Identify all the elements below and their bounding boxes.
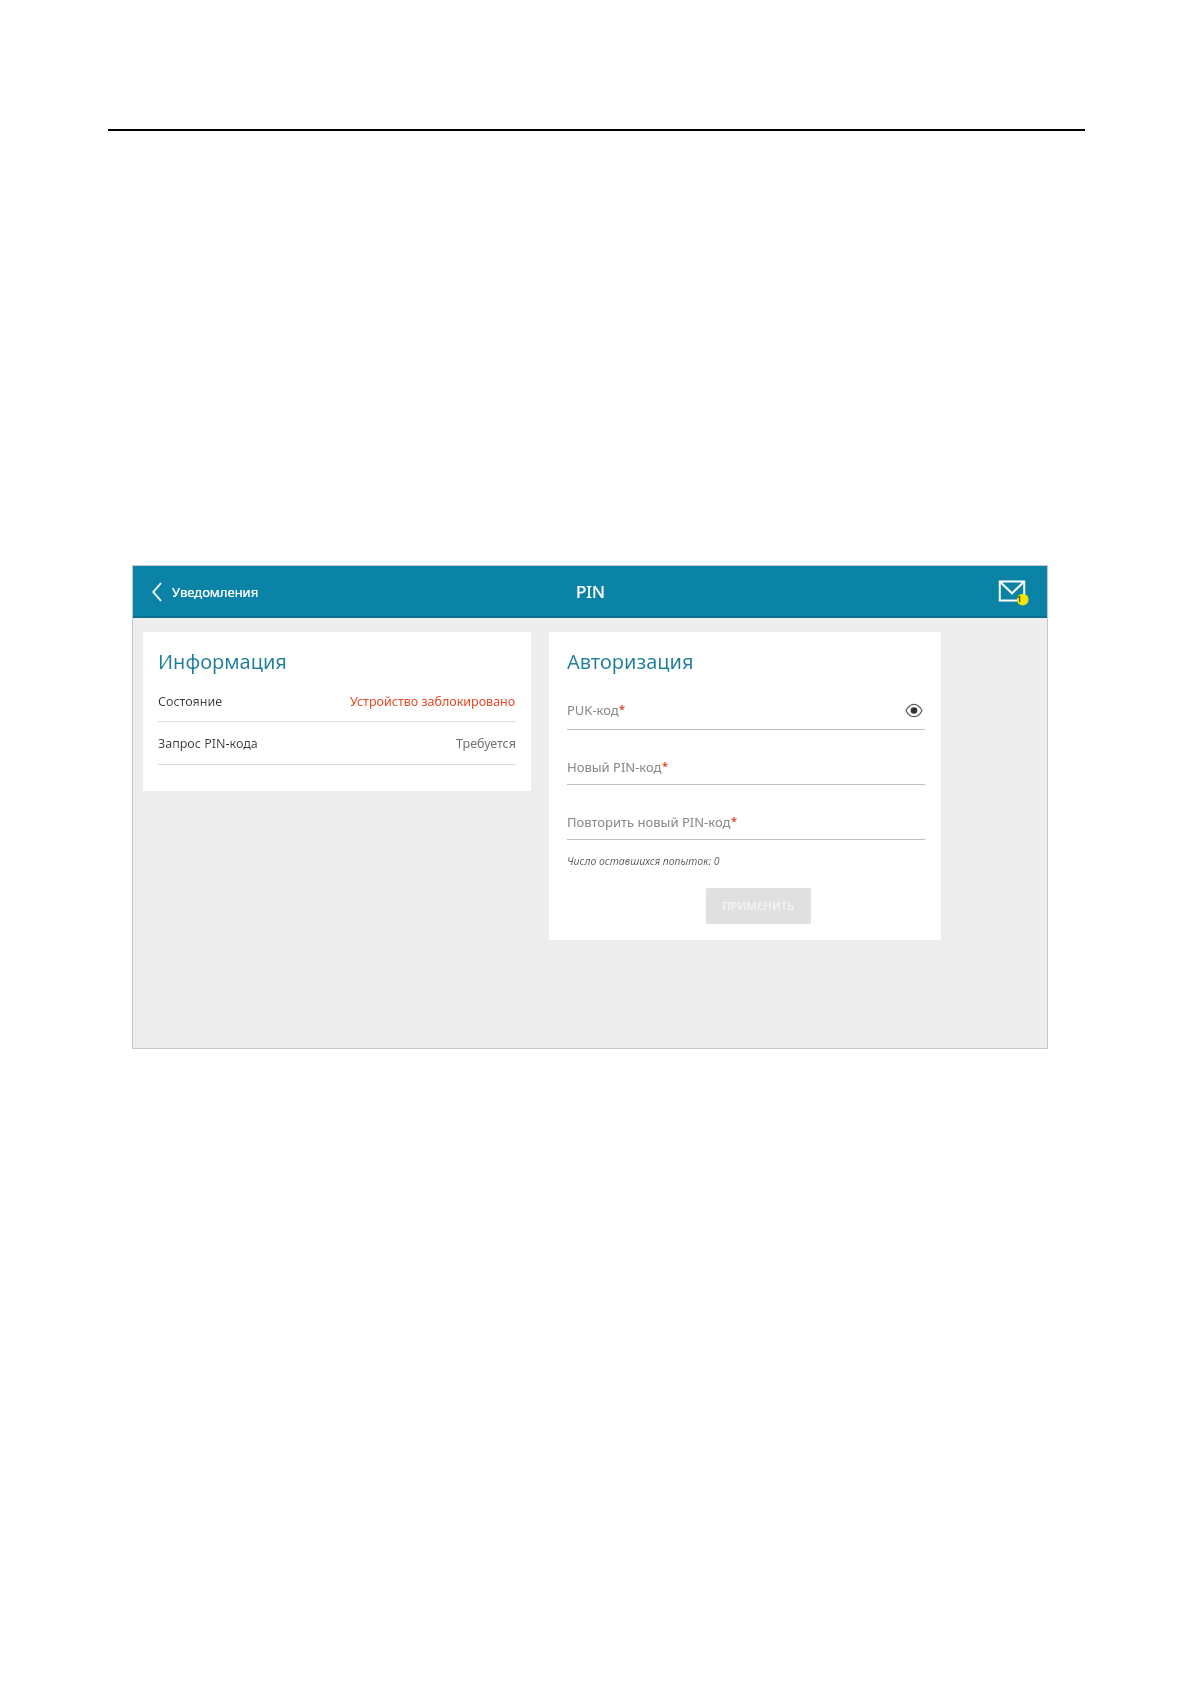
- staticText: Запрос PIN-кода: [158, 735, 258, 752]
- button[interactable]: Уведомления: [146, 577, 265, 607]
- button[interactable]: Notifications: [992, 572, 1032, 612]
- staticText: *: [619, 701, 625, 716]
- staticText: Повторить новый PIN-код: [567, 813, 731, 831]
- staticText: Новый PIN-код: [567, 758, 662, 776]
- staticText: *: [731, 813, 737, 828]
- staticText: *: [662, 758, 668, 773]
- staticText: Уведомления: [172, 583, 259, 601]
- button[interactable]: ПРИМЕНИТЬ: [706, 888, 811, 924]
- staticText: Авторизация: [567, 648, 694, 675]
- staticText: Информация: [158, 648, 287, 675]
- staticText: Число оставшихся попыток: 0: [567, 854, 720, 868]
- staticText: ПРИМЕНИТЬ: [722, 898, 795, 914]
- staticText: Состояние: [158, 693, 223, 710]
- staticText: PUK-код: [567, 701, 619, 719]
- staticText: Требуется: [456, 735, 516, 752]
- staticText: 1: [1017, 593, 1022, 604]
- button[interactable]: Show PUK code: [903, 699, 925, 721]
- staticText: PIN: [576, 580, 605, 603]
- staticText: Устройство заблокировано: [350, 693, 516, 710]
